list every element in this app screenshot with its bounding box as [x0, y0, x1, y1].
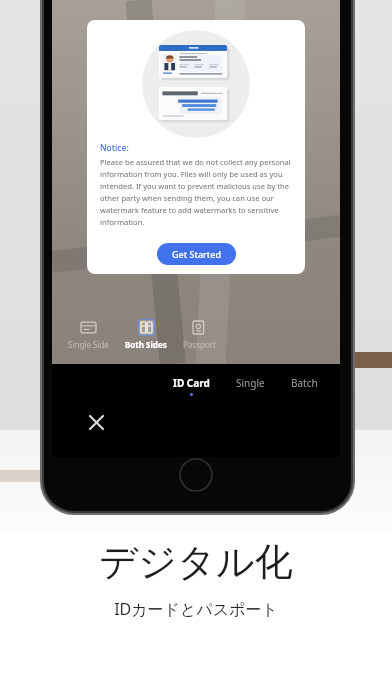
staticText: Get Started [172, 248, 222, 260]
staticText: Single [236, 376, 265, 390]
button[interactable]: Get Started [157, 243, 236, 265]
staticText: Batch [291, 376, 318, 390]
button[interactable]: ID Card [170, 374, 213, 398]
staticText: Passport [183, 339, 216, 350]
staticText: Please be assured that we do not collect… [100, 157, 292, 227]
staticText: ID Card [173, 376, 210, 390]
staticText: Single Side [68, 339, 109, 350]
button[interactable]: Home [179, 458, 213, 492]
button[interactable]: Passport [181, 319, 218, 350]
staticText: IDカードとパスポート [114, 598, 278, 620]
button[interactable]: Single Side [66, 319, 111, 350]
staticText: デジタル化 [99, 538, 293, 586]
button[interactable]: Batch [288, 374, 321, 392]
button[interactable]: Single [233, 374, 268, 392]
button[interactable]: Close [82, 408, 110, 436]
staticText: Notice: [100, 142, 129, 154]
staticText: Both Sides [125, 339, 167, 350]
button[interactable]: Both Sides [123, 319, 169, 350]
